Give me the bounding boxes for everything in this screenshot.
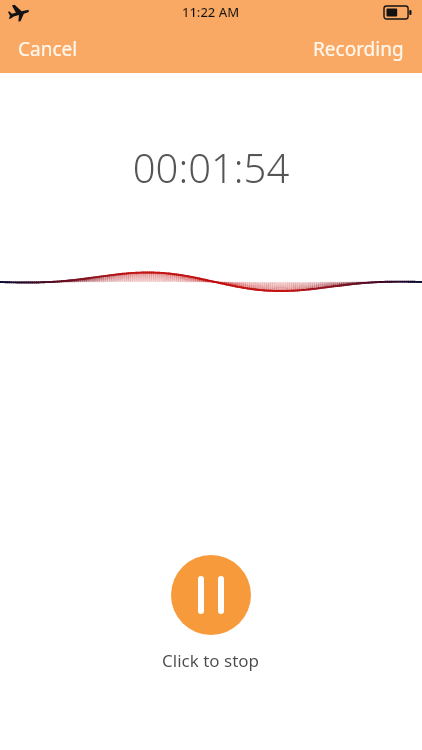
- staticText: Click to stop: [162, 649, 260, 672]
- staticText: Recording: [313, 36, 404, 62]
- staticText: 00:01:54: [0, 140, 422, 194]
- staticText: 11:22 AM: [182, 3, 240, 21]
- staticText: Cancel: [18, 36, 78, 62]
- button[interactable]: Cancel: [0, 30, 90, 68]
- button[interactable]: Stop recording: [171, 555, 251, 635]
- button[interactable]: Recording: [301, 30, 422, 68]
